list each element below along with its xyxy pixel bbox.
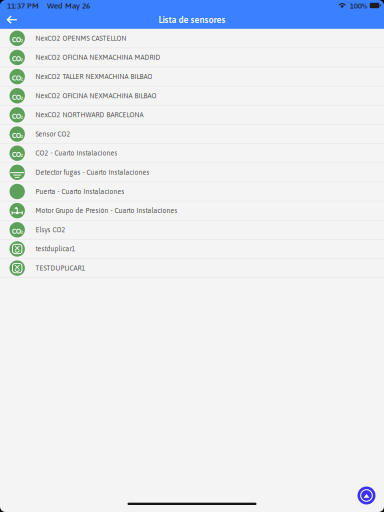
staticText: NexCO2 NORTHWARD BARCELONA: [35, 111, 143, 119]
button[interactable]: CO₂: [0, 48, 384, 67]
staticText: 11:37 PM: [7, 1, 39, 10]
button[interactable]: CO₂: [0, 144, 384, 163]
button[interactable]: CO₂: [0, 106, 384, 125]
staticText: NexCO2 TALLER NEXMACHINA BILBAO: [35, 73, 152, 80]
staticText: 100%: [350, 1, 368, 10]
staticText: testduplicar1: [35, 245, 75, 253]
button[interactable]: testduplicar1: [0, 240, 384, 259]
button[interactable]: CO₂: [0, 29, 384, 48]
button[interactable]: CO₂: [0, 67, 384, 86]
staticText: CO2 - Cuarto Instalaciones: [35, 149, 117, 157]
staticText: CO₂: [12, 112, 23, 120]
staticText: Detector fugas - Cuarto Instalaciones: [35, 168, 149, 176]
staticText: CO₂: [12, 35, 23, 44]
staticText: Elsys CO2: [35, 226, 65, 234]
staticText: CO₂: [12, 150, 23, 159]
button[interactable]: CO₂: [0, 220, 384, 240]
button[interactable]: Detector fugas - Cuarto Instalaciones: [0, 163, 384, 182]
staticText: NexCO2 OFICINA NEXMACHINA MADRID: [35, 54, 160, 61]
staticText: NexCO2 OPENMS CASTELLON: [35, 34, 126, 42]
button[interactable]: CO₂: [0, 86, 384, 106]
button[interactable]: Scroll to top: [353, 482, 379, 508]
button[interactable]: CO₂: [0, 125, 384, 144]
staticText: TESTDUPLICAR1: [35, 264, 85, 272]
staticText: Lista de sensores: [158, 14, 225, 25]
button[interactable]: TESTDUPLICAR1: [0, 259, 384, 278]
staticText: NexCO2 OFICINA NEXMACHINA BILBAO: [35, 92, 156, 99]
staticText: CO₂: [12, 131, 23, 140]
staticText: Sensor CO2: [35, 130, 70, 138]
staticText: Motor Grupo de Presión - Cuarto Instalac…: [35, 207, 177, 214]
button[interactable]: Back: [0, 11, 23, 29]
staticText: Wed May 26: [47, 1, 90, 10]
staticText: CO₂: [12, 73, 23, 82]
button[interactable]: Motor Grupo de Presión - Cuarto Instalac…: [0, 201, 384, 221]
staticText: Puerta - Cuarto Instalaciones: [35, 188, 124, 195]
staticText: CO₂: [12, 93, 23, 101]
staticText: CO₂: [12, 54, 23, 63]
staticText: CO₂: [12, 227, 23, 235]
button[interactable]: Puerta - Cuarto Instalaciones: [0, 182, 384, 201]
